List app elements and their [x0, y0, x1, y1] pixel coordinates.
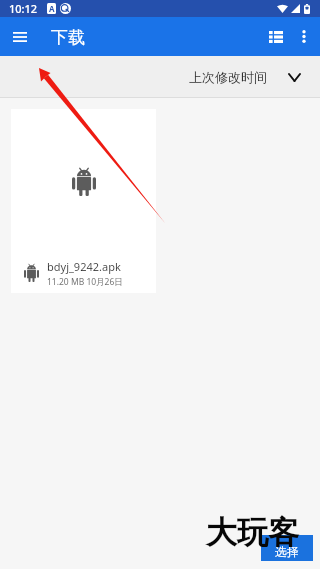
- button[interactable]: More options: [287, 17, 320, 56]
- staticText: 大玩客: [206, 513, 299, 552]
- button[interactable]: 上次修改时间: [179, 60, 311, 94]
- staticText: 11.20 MB 10月26日: [47, 276, 123, 288]
- staticText: bdyj_9242.apk: [47, 259, 121, 274]
- staticText: 下载: [51, 27, 85, 48]
- button[interactable]: Switch view layout: [265, 17, 287, 56]
- staticText: 选择: [275, 544, 299, 559]
- staticText: 上次修改时间: [189, 69, 267, 85]
- button[interactable]: 选择: [261, 535, 313, 561]
- button[interactable]: Open navigation drawer: [0, 17, 40, 56]
- button[interactable]: bdyj_9242.apk: [11, 109, 156, 293]
- staticText: A: [49, 3, 55, 14]
- staticText: 10:12: [9, 1, 38, 16]
